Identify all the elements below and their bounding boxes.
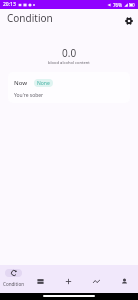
staticText: blood alcohol content [48,60,90,66]
staticText: Condition [7,11,53,25]
staticText: Now [14,79,28,87]
staticText: None [37,80,50,87]
staticText: 0.0 [62,46,77,60]
button[interactable]: Settings [121,13,136,28]
staticText: 76% [113,2,122,8]
button[interactable]: Condition [0,265,27,293]
button[interactable]: Statistics [82,265,110,293]
staticText: 20:13 [3,1,16,8]
button[interactable]: History [27,265,54,293]
staticText: Condition [3,281,24,287]
button[interactable]: Now [8,72,130,103]
button[interactable]: Add [54,265,82,293]
button[interactable]: Profile [110,265,138,293]
staticText: You're sober [14,92,44,99]
